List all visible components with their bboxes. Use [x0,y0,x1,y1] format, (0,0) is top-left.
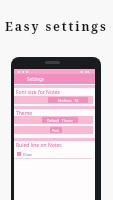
button[interactable]: Pink [50,127,62,133]
staticText: Theme [16,110,33,117]
button[interactable]: Medium 18 [14,96,93,104]
staticText: Settings [27,76,45,82]
button[interactable]: Draw [14,151,93,157]
staticText: Medium 18 [58,98,79,103]
staticText: Draw [23,152,32,157]
button[interactable]: Default Theme [42,117,78,123]
staticText: Ruled line on Notes [16,142,62,149]
button[interactable]: Default Theme [14,116,93,124]
staticText: Font size for Notes [16,89,60,96]
button[interactable]: Medium 18 [48,97,88,103]
staticText: Easy settings [5,18,108,34]
button[interactable]: Pink [14,126,93,134]
staticText: Pink [52,128,60,133]
staticText: Default Theme [47,118,74,123]
